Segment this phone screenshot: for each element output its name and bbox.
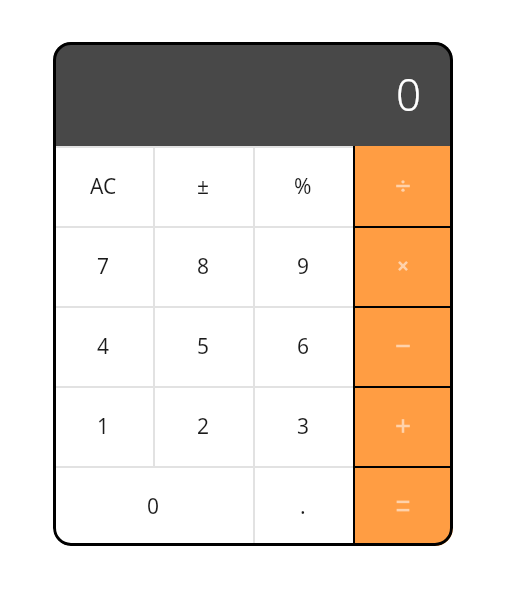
staticText: 2 [197, 412, 210, 441]
button[interactable]: Equals [353, 466, 453, 546]
button[interactable]: Add [353, 386, 453, 466]
button[interactable]: ± [153, 146, 253, 226]
button[interactable]: 1 [53, 386, 153, 466]
button[interactable]: 9 [253, 226, 353, 306]
staticText: % [294, 172, 312, 201]
staticText: 7 [97, 252, 110, 281]
staticText: 1 [97, 412, 110, 441]
button[interactable]: 8 [153, 226, 253, 306]
button[interactable]: Divide [353, 146, 453, 226]
button[interactable]: 3 [253, 386, 353, 466]
staticText: 6 [297, 332, 310, 361]
staticText: 4 [97, 332, 110, 361]
staticText: ± [197, 172, 210, 201]
staticText: 8 [197, 252, 210, 281]
staticText: 9 [297, 252, 310, 281]
button[interactable]: Subtract [353, 306, 453, 386]
button[interactable]: Multiply [353, 226, 453, 306]
button[interactable]: 0 [53, 466, 253, 546]
staticText: 0 [147, 492, 160, 521]
button[interactable]: 6 [253, 306, 353, 386]
button[interactable]: 2 [153, 386, 253, 466]
staticText: 0 [395, 64, 421, 124]
button[interactable]: . [253, 466, 353, 546]
button[interactable]: % [253, 146, 353, 226]
button[interactable]: AC [53, 146, 153, 226]
staticText: . [300, 492, 306, 521]
staticText: 3 [297, 412, 310, 441]
button[interactable]: 5 [153, 306, 253, 386]
button[interactable]: 7 [53, 226, 153, 306]
staticText: AC [90, 172, 117, 201]
staticText: 5 [197, 332, 210, 361]
button[interactable]: 4 [53, 306, 153, 386]
